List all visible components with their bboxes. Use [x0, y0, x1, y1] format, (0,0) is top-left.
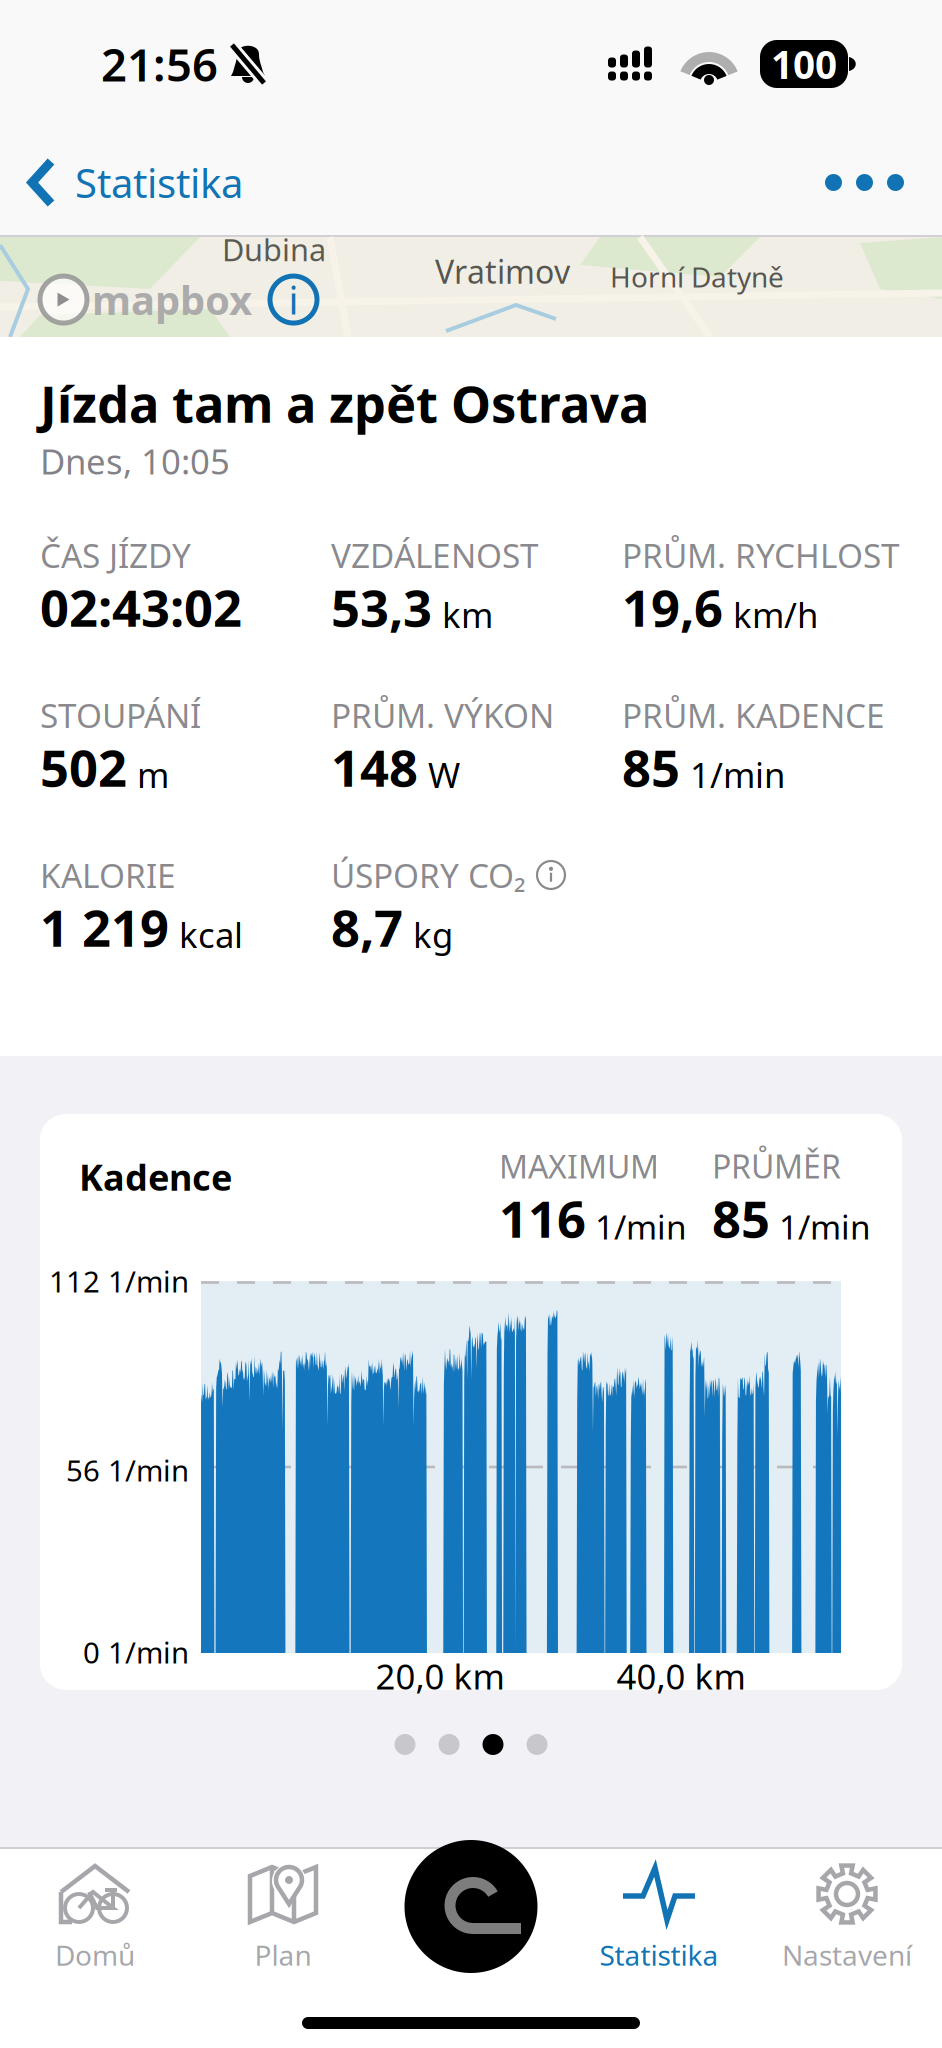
staticText: km [442, 592, 493, 638]
button[interactable]: Statistika [565, 1865, 753, 2015]
staticText: 0 1/min [83, 1632, 189, 1671]
staticText: 02:43:02 [40, 573, 242, 641]
staticText: 148 [331, 733, 418, 801]
staticText: Statistika [599, 1936, 718, 1974]
staticText: PRŮM. RYCHLOST [622, 533, 900, 577]
staticText: PRŮM. VÝKON [331, 693, 554, 737]
staticText: km/h [733, 592, 818, 638]
staticText: PRŮM. KADENCE [622, 693, 885, 737]
staticText: Dnes, 10:05 [40, 438, 230, 484]
button[interactable]: More [787, 129, 942, 236]
staticText: 1/min [595, 1204, 687, 1249]
staticText: kcal [179, 912, 243, 958]
button[interactable]: Start recording [377, 1865, 565, 2015]
staticText: Kadence [79, 1153, 232, 1201]
staticText: i [288, 274, 298, 325]
button[interactable]: Plan [189, 1865, 377, 2015]
staticText: Dubina [222, 229, 326, 270]
staticText: STOUPÁNÍ [40, 693, 201, 737]
staticText: 19,6 [622, 573, 723, 641]
staticText: 116 [499, 1184, 586, 1252]
button[interactable]: Domů [1, 1865, 189, 2015]
staticText: 21:56 [101, 34, 218, 94]
staticText: Horní Datyně [610, 258, 784, 295]
staticText: 53,3 [331, 573, 432, 641]
staticText: m [137, 752, 169, 798]
staticText: VZDÁLENOST [331, 533, 539, 577]
staticText: 1/min [779, 1204, 871, 1249]
staticText: 40,0 km [616, 1653, 745, 1699]
staticText: Plan [254, 1936, 311, 1974]
staticText: W [428, 752, 460, 798]
staticText: 1 219 [40, 893, 169, 961]
staticText: 85 [622, 733, 680, 801]
staticText: ČAS JÍZDY [40, 533, 191, 577]
staticText: ÚSPORY CO₂ [331, 853, 526, 897]
staticText: 112 1/min [49, 1261, 189, 1300]
staticText: Statistika [75, 156, 243, 209]
staticText: 1/min [690, 752, 785, 798]
staticText: KALORIE [40, 853, 176, 897]
button[interactable]: Map information [270, 276, 317, 323]
staticText: 85 [712, 1184, 770, 1252]
staticText: Jízda tam a zpět Ostrava [40, 369, 649, 437]
staticText: 502 [40, 733, 127, 801]
button[interactable]: Record ride [404, 1840, 537, 1973]
staticText: Vratimov [435, 250, 570, 292]
staticText: 20,0 km [375, 1653, 504, 1699]
staticText: mapbox [92, 273, 252, 326]
staticText: PRŮMĚR [712, 1145, 841, 1187]
staticText: 56 1/min [66, 1450, 189, 1489]
staticText: Domů [55, 1936, 135, 1974]
staticText: kg [413, 912, 453, 958]
staticText: MAXIMUM [499, 1145, 659, 1187]
button[interactable]: Statistika [0, 129, 267, 236]
staticText: 8,7 [331, 893, 403, 961]
staticText: Nastavení [782, 1936, 912, 1974]
button[interactable]: Nastavení [753, 1865, 941, 2015]
staticText: 100 [771, 38, 837, 90]
